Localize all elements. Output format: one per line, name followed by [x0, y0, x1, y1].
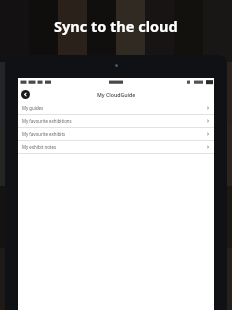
staticText: Sync to the cloud	[54, 16, 178, 36]
staticText: My exhibit notes	[22, 144, 206, 150]
staticText: My guides	[22, 105, 206, 111]
button[interactable]: Back	[21, 90, 30, 99]
staticText: My favourite exhibitions	[22, 118, 206, 124]
button[interactable]: My guides	[18, 102, 214, 114]
staticText: My CloudGuide	[97, 91, 136, 98]
button[interactable]: My favourite exhibitions	[18, 115, 214, 127]
button[interactable]: My exhibit notes	[18, 141, 214, 153]
staticText: My favourite exhibits	[22, 131, 206, 137]
button[interactable]: My favourite exhibits	[18, 128, 214, 140]
